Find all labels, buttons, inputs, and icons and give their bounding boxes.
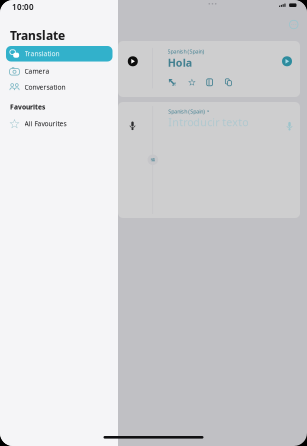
button[interactable]: Play xyxy=(280,54,294,68)
button[interactable]: Camera xyxy=(6,63,112,79)
button[interactable]: Spanish (Spain) xyxy=(168,108,209,115)
button[interactable]: Copy xyxy=(223,77,234,88)
button[interactable]: All Favourites xyxy=(6,116,112,131)
staticText: Hola xyxy=(168,55,192,70)
staticText: Translate xyxy=(10,27,65,43)
button[interactable]: Full screen xyxy=(167,77,178,88)
staticText: Spanish (Spain) xyxy=(168,108,205,115)
staticText: Introducir texto xyxy=(168,115,248,129)
button[interactable]: Conversation xyxy=(6,79,112,95)
button[interactable]: More xyxy=(286,17,301,32)
button[interactable]: Add to favourites xyxy=(186,77,197,88)
button[interactable]: Play translation xyxy=(126,54,140,68)
staticText: Favourites xyxy=(10,102,45,111)
staticText: Spanish (Spain) xyxy=(167,48,204,55)
button[interactable]: Swap languages xyxy=(148,154,158,165)
staticText: Translation xyxy=(24,49,59,58)
staticText: 10:00 xyxy=(12,1,34,12)
button[interactable]: Dictionary xyxy=(204,77,215,88)
button[interactable]: Speak xyxy=(282,119,296,133)
staticText: Conversation xyxy=(24,83,65,92)
staticText: Camera xyxy=(24,67,49,76)
button[interactable]: Dictate xyxy=(125,118,139,132)
button[interactable]: Translation xyxy=(6,46,112,61)
staticText: All Favourites xyxy=(24,119,66,128)
